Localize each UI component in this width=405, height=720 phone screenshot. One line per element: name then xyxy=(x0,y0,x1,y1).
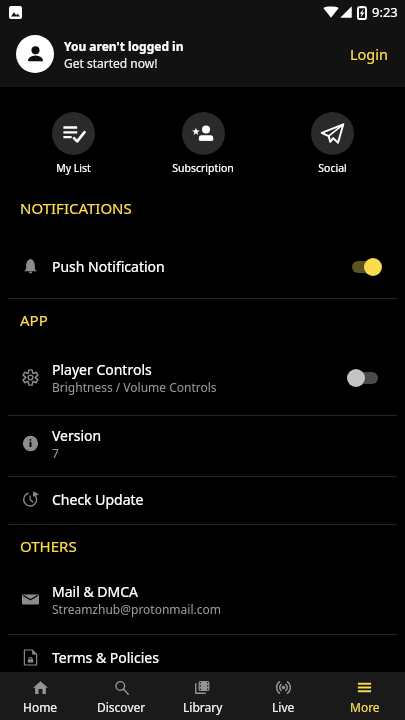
staticText: Push Notification xyxy=(52,257,165,276)
staticText: APP xyxy=(20,310,48,330)
staticText: Login xyxy=(350,44,388,64)
button[interactable]: Discover xyxy=(81,672,162,720)
button[interactable]: Check Update xyxy=(0,477,405,523)
staticText: Terms & Policies xyxy=(52,648,159,667)
button[interactable]: You aren't logged in xyxy=(0,28,405,87)
staticText: Brightness / Volume Controls xyxy=(52,379,217,395)
staticText: Check Update xyxy=(52,490,144,509)
staticText: More xyxy=(350,699,380,715)
button[interactable]: Terms & Policies xyxy=(0,635,405,682)
staticText: NOTIFICATIONS xyxy=(20,198,132,218)
button[interactable]: Home xyxy=(0,672,81,720)
staticText: Discover xyxy=(97,699,146,715)
button[interactable]: Player Controls xyxy=(0,347,405,408)
button[interactable]: Version xyxy=(0,416,405,476)
staticText: Version xyxy=(52,426,102,445)
button[interactable]: Subscription xyxy=(150,87,256,175)
button[interactable]: Player controls toggle xyxy=(347,368,383,388)
button[interactable]: Login xyxy=(349,38,389,70)
staticText: Get started now! xyxy=(64,55,158,71)
staticText: 7 xyxy=(52,445,59,461)
button[interactable]: Mail & DMCA xyxy=(0,569,405,630)
button[interactable]: More xyxy=(324,672,405,720)
staticText: Home xyxy=(23,699,58,715)
button[interactable]: Social xyxy=(279,87,385,175)
staticText: My List xyxy=(56,161,91,175)
staticText: 9:23 xyxy=(372,3,398,21)
staticText: Social xyxy=(318,161,347,175)
button[interactable]: Push notification toggle xyxy=(347,257,383,277)
button[interactable]: Live xyxy=(243,672,324,720)
other: Screenshot xyxy=(9,6,22,19)
staticText: Player Controls xyxy=(52,360,152,379)
staticText: OTHERS xyxy=(20,536,77,556)
staticText: Mail & DMCA xyxy=(52,582,139,601)
button[interactable]: Push Notification xyxy=(0,243,405,290)
staticText: You aren't logged in xyxy=(64,38,184,54)
staticText: Live xyxy=(272,699,295,715)
button[interactable]: Library xyxy=(162,672,243,720)
staticText: Streamzhub@protonmail.com xyxy=(52,601,221,617)
staticText: Subscription xyxy=(172,161,234,175)
staticText: Library xyxy=(183,699,223,715)
button[interactable]: My List xyxy=(20,87,126,175)
